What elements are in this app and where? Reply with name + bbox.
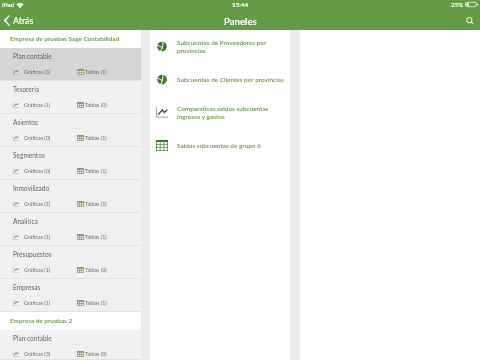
button[interactable]: Plan contable — [0, 48, 141, 81]
staticText: Gráficas (3) — [24, 69, 51, 75]
button[interactable]: Gráficas (1) — [13, 267, 51, 273]
button[interactable]: Tablas (1) — [77, 234, 107, 240]
staticText: Gráficas (0) — [24, 168, 51, 174]
button[interactable]: Presupuestos — [0, 246, 141, 279]
staticText: Gráficas (1) — [24, 102, 51, 108]
button[interactable]: Analítica — [0, 213, 141, 246]
button[interactable]: Gráficas (3) — [13, 69, 51, 75]
button[interactable]: Inmovilizado — [0, 180, 141, 213]
staticText: Comparativas saldos subcuentas ingresos … — [177, 105, 286, 120]
staticText: Inmovilizado — [13, 185, 50, 193]
staticText: Gráficas (1) — [24, 267, 51, 273]
button[interactable]: Tablas (0) — [77, 102, 107, 108]
staticText: Saldos subcuentas de grupo 6 — [177, 142, 286, 150]
button[interactable]: Subcuentas de Clientes por provincias — [150, 63, 290, 96]
button[interactable]: Asientos — [0, 114, 141, 147]
button[interactable]: Tablas (0) — [77, 267, 107, 273]
button[interactable]: Gráficas (3) — [13, 351, 51, 357]
staticText: Tablas (1) — [85, 300, 107, 306]
staticText: Asientos — [13, 119, 38, 127]
button[interactable]: Gráficas (1) — [13, 102, 51, 108]
staticText: Tablas (1) — [85, 135, 107, 141]
staticText: Gráficas (3) — [24, 351, 51, 357]
button[interactable]: Gráficas (1) — [13, 234, 51, 240]
staticText: iPad — [2, 1, 15, 9]
button[interactable]: Tablas (1) — [77, 201, 107, 207]
staticText: Tesorería — [13, 86, 39, 94]
button[interactable]: Empresa de pruebas Sage Contabilidad — [0, 30, 141, 48]
staticText: Subcuentas de Clientes por provincias — [177, 76, 286, 84]
button[interactable]: Gráficas (0) — [13, 135, 51, 141]
staticText: Empresas — [13, 284, 41, 292]
button[interactable]: Tablas (1) — [77, 300, 107, 306]
button[interactable]: Buscar — [460, 14, 480, 28]
staticText: Gráficas (1) — [24, 201, 51, 207]
button[interactable]: Atrás — [0, 13, 40, 28]
staticText: Empresa de pruebas 2 — [10, 317, 73, 325]
staticText: Presupuestos — [13, 251, 52, 259]
button[interactable]: Plan contable — [0, 330, 141, 360]
button[interactable]: Tesorería — [0, 81, 141, 114]
staticText: Tablas (0) — [85, 102, 107, 108]
staticText: Plan contable — [13, 53, 52, 61]
button[interactable]: Tablas (1) — [77, 135, 107, 141]
staticText: Gráficas (1) — [24, 300, 51, 306]
staticText: 15:44 — [232, 1, 249, 9]
staticText: Paneles — [224, 15, 257, 27]
button[interactable]: Saldos subcuentas de grupo 6 — [150, 129, 290, 162]
button[interactable]: Subcuentas de Proveedores por provincias — [150, 30, 290, 63]
staticText: Subcuentas de Proveedores por provincias — [177, 39, 286, 54]
staticText: 25% — [451, 1, 464, 8]
button[interactable]: Tablas (0) — [77, 351, 107, 357]
button[interactable]: Gráficas (1) — [13, 300, 51, 306]
button[interactable]: Comparativas saldos subcuentas ingresos … — [150, 96, 290, 129]
staticText: Tablas (0) — [85, 351, 107, 357]
button[interactable]: Empresa de pruebas 2 — [0, 312, 141, 330]
button[interactable]: Gráficas (1) — [13, 201, 51, 207]
staticText: Gráficas (0) — [24, 135, 51, 141]
button[interactable]: Empresas — [0, 279, 141, 312]
staticText: Analítica — [13, 218, 38, 226]
button[interactable]: Tablas (1) — [77, 168, 107, 174]
staticText: Tablas (1) — [85, 234, 107, 240]
staticText: Tablas (1) — [85, 69, 107, 75]
staticText: Tablas (1) — [85, 168, 107, 174]
button[interactable]: Tablas (1) — [77, 69, 107, 75]
staticText: Gráficas (1) — [24, 234, 51, 240]
button[interactable]: Segmentos — [0, 147, 141, 180]
button[interactable]: Gráficas (0) — [13, 168, 51, 174]
staticText: Atrás — [13, 15, 34, 26]
staticText: Empresa de pruebas Sage Contabilidad — [10, 35, 120, 43]
staticText: Tablas (0) — [85, 267, 107, 273]
staticText: Plan contable — [13, 335, 52, 343]
staticText: Tablas (1) — [85, 201, 107, 207]
staticText: Segmentos — [13, 152, 45, 160]
